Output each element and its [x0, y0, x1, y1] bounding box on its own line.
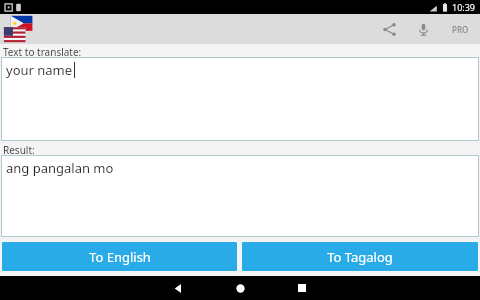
button[interactable]: your name: [1, 57, 479, 141]
staticText: Result:: [3, 143, 35, 155]
button[interactable]: ang pangalan mo: [1, 155, 479, 237]
staticText: Text to translate:: [3, 45, 82, 57]
button[interactable]: Voice input: [406, 14, 440, 44]
button[interactable]: PRO: [440, 14, 480, 44]
staticText: ang pangalan mo: [6, 159, 114, 177]
button[interactable]: To Tagalog: [242, 242, 478, 271]
staticText: To English: [89, 248, 151, 266]
staticText: PRO: [452, 24, 469, 35]
button[interactable]: To English: [2, 242, 237, 271]
staticText: To Tagalog: [327, 248, 393, 266]
button[interactable]: Share: [372, 14, 406, 44]
button[interactable]: Back: [147, 276, 209, 300]
button[interactable]: Recent apps: [271, 276, 333, 300]
button[interactable]: Home: [209, 276, 271, 300]
staticText: your name: [6, 61, 73, 79]
staticText: 10:39: [452, 1, 476, 13]
button[interactable]: Switch languages: [3, 14, 33, 44]
